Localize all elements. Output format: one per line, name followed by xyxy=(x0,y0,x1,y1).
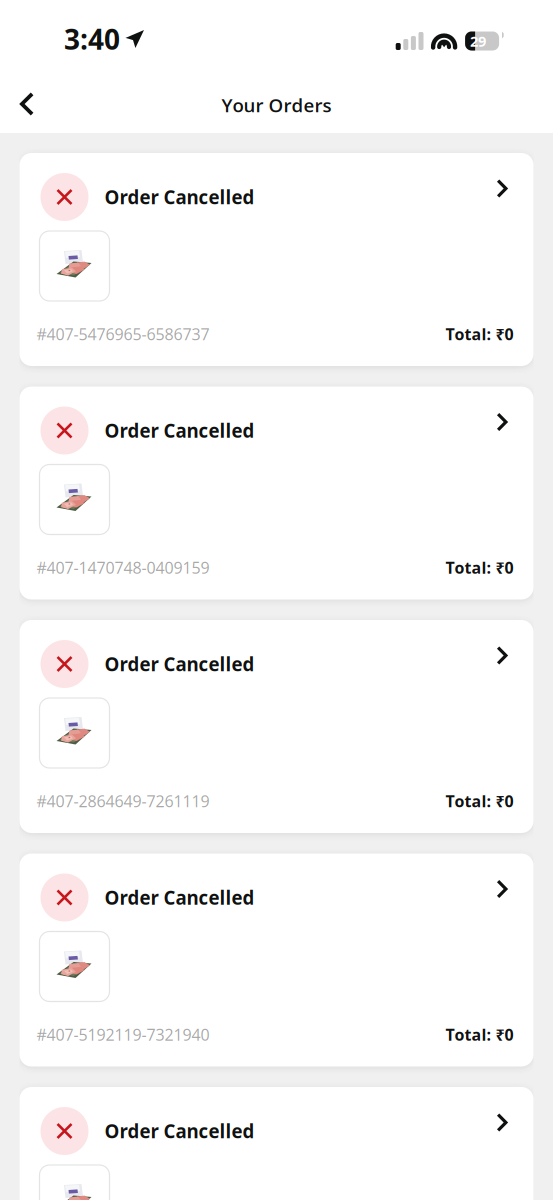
button[interactable]: Order Cancelled xyxy=(19,386,533,599)
button[interactable]: Back xyxy=(6,80,48,128)
staticText: #407-5192119-7321940 xyxy=(36,1024,209,1045)
button[interactable]: Order Cancelled xyxy=(19,1087,533,1200)
staticText: Total: ₹0 xyxy=(445,1024,513,1045)
staticText: Your Orders xyxy=(221,92,331,118)
button[interactable]: Order Cancelled xyxy=(19,153,533,366)
staticText: #407-1470748-0409159 xyxy=(36,557,209,578)
staticText: Total: ₹0 xyxy=(445,790,513,812)
button[interactable]: Order Cancelled xyxy=(19,620,533,833)
staticText: Order Cancelled xyxy=(104,885,254,910)
staticText: Order Cancelled xyxy=(104,651,254,677)
staticText: Order Cancelled xyxy=(104,1118,254,1144)
staticText: Order Cancelled xyxy=(104,184,254,210)
staticText: Order Cancelled xyxy=(104,418,254,443)
button[interactable]: Order Cancelled xyxy=(19,853,533,1066)
staticText: #407-5476965-6586737 xyxy=(36,323,209,345)
staticText: Total: ₹0 xyxy=(445,557,513,578)
staticText: 3:40 xyxy=(64,20,120,58)
staticText: 29 xyxy=(470,31,486,51)
staticText: #407-2864649-7261119 xyxy=(36,790,209,812)
staticText: Total: ₹0 xyxy=(445,323,513,345)
